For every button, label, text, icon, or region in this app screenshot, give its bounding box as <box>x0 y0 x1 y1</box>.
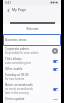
button[interactable]: Option <box>53 99 58 100</box>
staticText: Business areas <box>5 38 27 42</box>
button[interactable]: Toggle <box>53 68 58 71</box>
button[interactable]: Toggle <box>53 60 58 63</box>
staticText: Retreats <box>26 27 39 31</box>
staticText: some something text <box>5 61 31 65</box>
staticText: Offer usable <box>5 67 23 71</box>
button[interactable]: Never on weekends <box>3 83 61 95</box>
staticText: Only visible for main admin <box>5 51 39 55</box>
button[interactable]: Terms update <box>3 97 61 101</box>
staticText: Corporate admin <box>5 47 29 51</box>
button[interactable]: Tuesday at 09.00 <box>3 73 61 81</box>
staticText: Tittle allows <box>5 57 22 61</box>
staticText: My Page <box>12 7 26 12</box>
staticText: no sends on weekends <box>5 87 33 91</box>
staticText: later in the evening <box>5 91 29 95</box>
button[interactable]: Toggle <box>53 88 58 91</box>
button[interactable]: Tittle allows <box>3 57 61 65</box>
staticText: Never on weekends <box>5 83 33 87</box>
staticText: Tuesday at 09.00 <box>5 73 29 77</box>
staticText: Terms update <box>5 97 25 101</box>
staticText: for new content <box>5 77 25 81</box>
button[interactable]: Corporate admin <box>3 47 61 55</box>
button[interactable]: Offer usable <box>3 67 61 71</box>
staticText: 9:41 <box>5 1 11 5</box>
button[interactable]: Back <box>5 7 11 13</box>
button[interactable]: Business areas <box>3 34 61 46</box>
button[interactable]: Profile <box>52 48 58 54</box>
